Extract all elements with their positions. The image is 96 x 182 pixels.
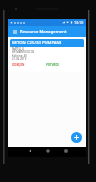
button[interactable]: Back <box>25 147 34 155</box>
button[interactable]: Menu <box>9 26 20 37</box>
button[interactable]: Home <box>43 147 52 155</box>
staticText: ODBIJEN <box>12 63 25 67</box>
button[interactable]: Recents <box>61 147 70 155</box>
staticText: BETON C25/30 PUMPANI <box>12 40 62 46</box>
staticText: 21.04.2019 <box>12 57 27 61</box>
staticText: 13:10 <box>74 20 84 25</box>
button[interactable]: Add <box>71 132 82 143</box>
button[interactable]: BETON C25/30 PUMPANI <box>10 39 84 72</box>
staticText: NATELJ,LJ <box>12 47 25 51</box>
button[interactable]: POTVRDI <box>46 63 59 67</box>
staticText: Resource Management <box>20 29 67 35</box>
staticText: BP:MARKOVIC IB <box>12 50 35 54</box>
staticText: POTVRDI <box>46 63 59 67</box>
staticText: Kolicina: 40 <box>12 54 27 58</box>
